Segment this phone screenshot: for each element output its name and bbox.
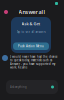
staticText: Push Action Menu (18, 44, 44, 48)
button[interactable]: Send (51, 85, 54, 88)
staticText: I would never have had the chance to spe… (10, 55, 58, 69)
button[interactable]: Push Action Menu (13, 42, 49, 50)
button[interactable]: Profile (4, 10, 8, 14)
staticText: Tap to see all answers (16, 30, 45, 34)
staticText: Answer all (18, 8, 45, 16)
staticText: Ask & Get (21, 21, 40, 26)
staticText: Ask anything (10, 85, 27, 89)
